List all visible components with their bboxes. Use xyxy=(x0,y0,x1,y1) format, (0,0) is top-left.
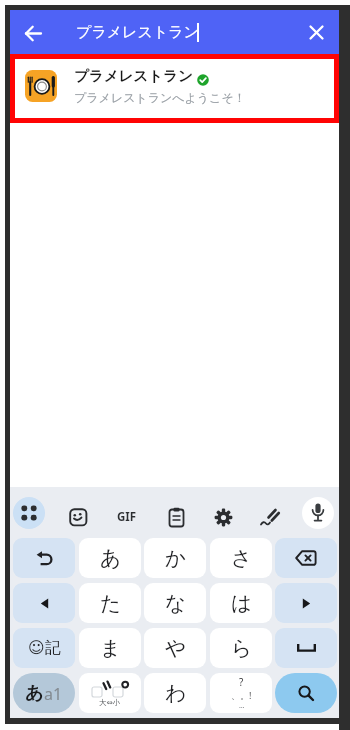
staticText: な xyxy=(165,590,186,616)
button[interactable]: GIF xyxy=(112,505,142,529)
staticText: … xyxy=(239,701,245,711)
button[interactable] xyxy=(13,538,75,578)
staticText: あ xyxy=(100,545,121,571)
staticText: ま xyxy=(100,635,121,661)
staticText: 、。! xyxy=(231,689,252,701)
staticText: あ xyxy=(25,682,44,705)
staticText: か xyxy=(165,545,186,571)
button[interactable] xyxy=(275,673,337,713)
button[interactable]: 大⇔小 xyxy=(79,673,141,713)
button[interactable]: か xyxy=(144,538,206,578)
button[interactable]: あ xyxy=(13,673,75,713)
button[interactable]: わ xyxy=(144,673,206,713)
button[interactable]: や xyxy=(144,628,206,668)
staticText: 大⇔小 xyxy=(99,698,121,707)
button[interactable] xyxy=(259,507,281,527)
staticText: プラメレストラン xyxy=(74,67,193,85)
button[interactable] xyxy=(69,508,88,527)
button[interactable] xyxy=(13,583,75,623)
button[interactable]: あ xyxy=(79,538,141,578)
staticText: ら xyxy=(231,635,252,661)
staticText: ? xyxy=(239,675,244,689)
button[interactable] xyxy=(302,497,334,529)
button[interactable] xyxy=(306,22,327,43)
button[interactable]: ☺記 xyxy=(13,628,75,668)
button[interactable]: ら xyxy=(210,628,272,668)
button[interactable] xyxy=(275,628,337,668)
button[interactable] xyxy=(214,508,233,527)
button[interactable]: さ xyxy=(210,538,272,578)
button[interactable]: ま xyxy=(79,628,141,668)
button[interactable]: た xyxy=(79,583,141,623)
staticText: a1 xyxy=(44,683,63,705)
button[interactable] xyxy=(275,583,337,623)
staticText: さ xyxy=(231,545,252,571)
button[interactable]: な xyxy=(144,583,206,623)
button[interactable] xyxy=(13,497,45,529)
staticText: た xyxy=(100,590,121,616)
button[interactable]: は xyxy=(210,583,272,623)
button[interactable] xyxy=(275,538,337,578)
button[interactable] xyxy=(15,59,334,118)
staticText: や xyxy=(165,635,186,661)
staticText: ☺記 xyxy=(28,638,61,658)
button[interactable] xyxy=(168,507,185,528)
staticText: わ xyxy=(165,680,186,706)
button[interactable] xyxy=(20,20,47,47)
staticText: プラメレストラン xyxy=(76,23,199,42)
button[interactable]: ? xyxy=(210,673,272,713)
staticText: プラメレストランへようこそ！ xyxy=(74,90,246,105)
staticText: GIF xyxy=(117,509,137,525)
staticText: は xyxy=(231,590,252,616)
